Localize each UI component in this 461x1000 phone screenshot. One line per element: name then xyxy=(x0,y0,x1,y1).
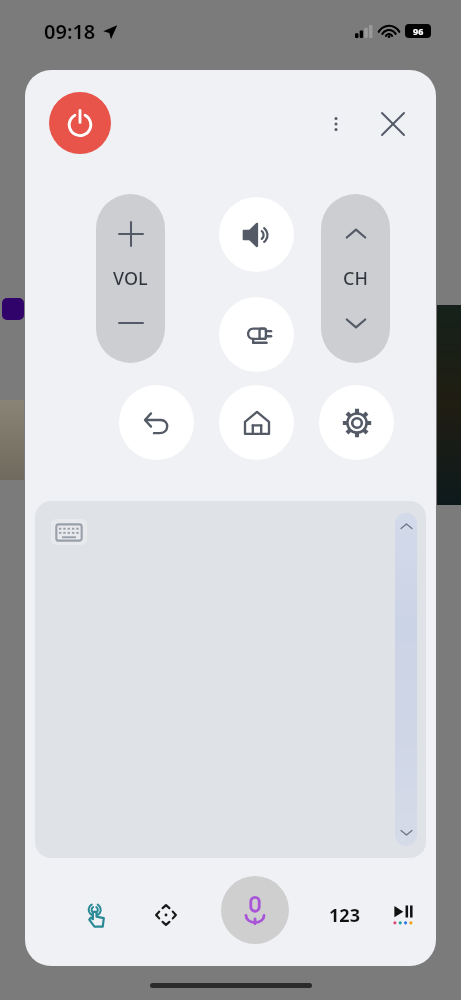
staticText: 123 xyxy=(329,903,360,928)
button[interactable]: Home xyxy=(219,385,294,460)
button[interactable]: Power xyxy=(49,92,111,154)
button[interactable]: Mute xyxy=(219,197,294,272)
button[interactable]: Settings xyxy=(319,385,394,460)
button[interactable]: Keyboard xyxy=(51,519,87,545)
button[interactable]: Scroll xyxy=(395,513,417,846)
button[interactable]: Back xyxy=(119,385,194,460)
button[interactable]: Input source xyxy=(219,297,294,372)
button[interactable]: Volume down xyxy=(96,297,165,349)
button[interactable]: Touch mode xyxy=(71,890,121,940)
staticText: CH xyxy=(343,266,368,291)
staticText: VOL xyxy=(113,266,148,291)
button[interactable]: Close xyxy=(372,103,414,145)
staticText: 96 xyxy=(413,25,424,37)
button[interactable]: D-pad xyxy=(143,892,189,938)
button[interactable]: Voice search xyxy=(221,876,289,944)
button[interactable]: Touchpad xyxy=(35,501,426,858)
button[interactable]: More options xyxy=(316,104,356,144)
button[interactable]: 123 xyxy=(313,892,375,938)
button[interactable]: Channel down xyxy=(321,297,390,349)
staticText: 09:18 xyxy=(44,18,96,45)
button[interactable]: Volume up xyxy=(96,208,165,260)
button[interactable]: Channel up xyxy=(321,208,390,260)
button[interactable]: Media controls xyxy=(380,890,430,940)
